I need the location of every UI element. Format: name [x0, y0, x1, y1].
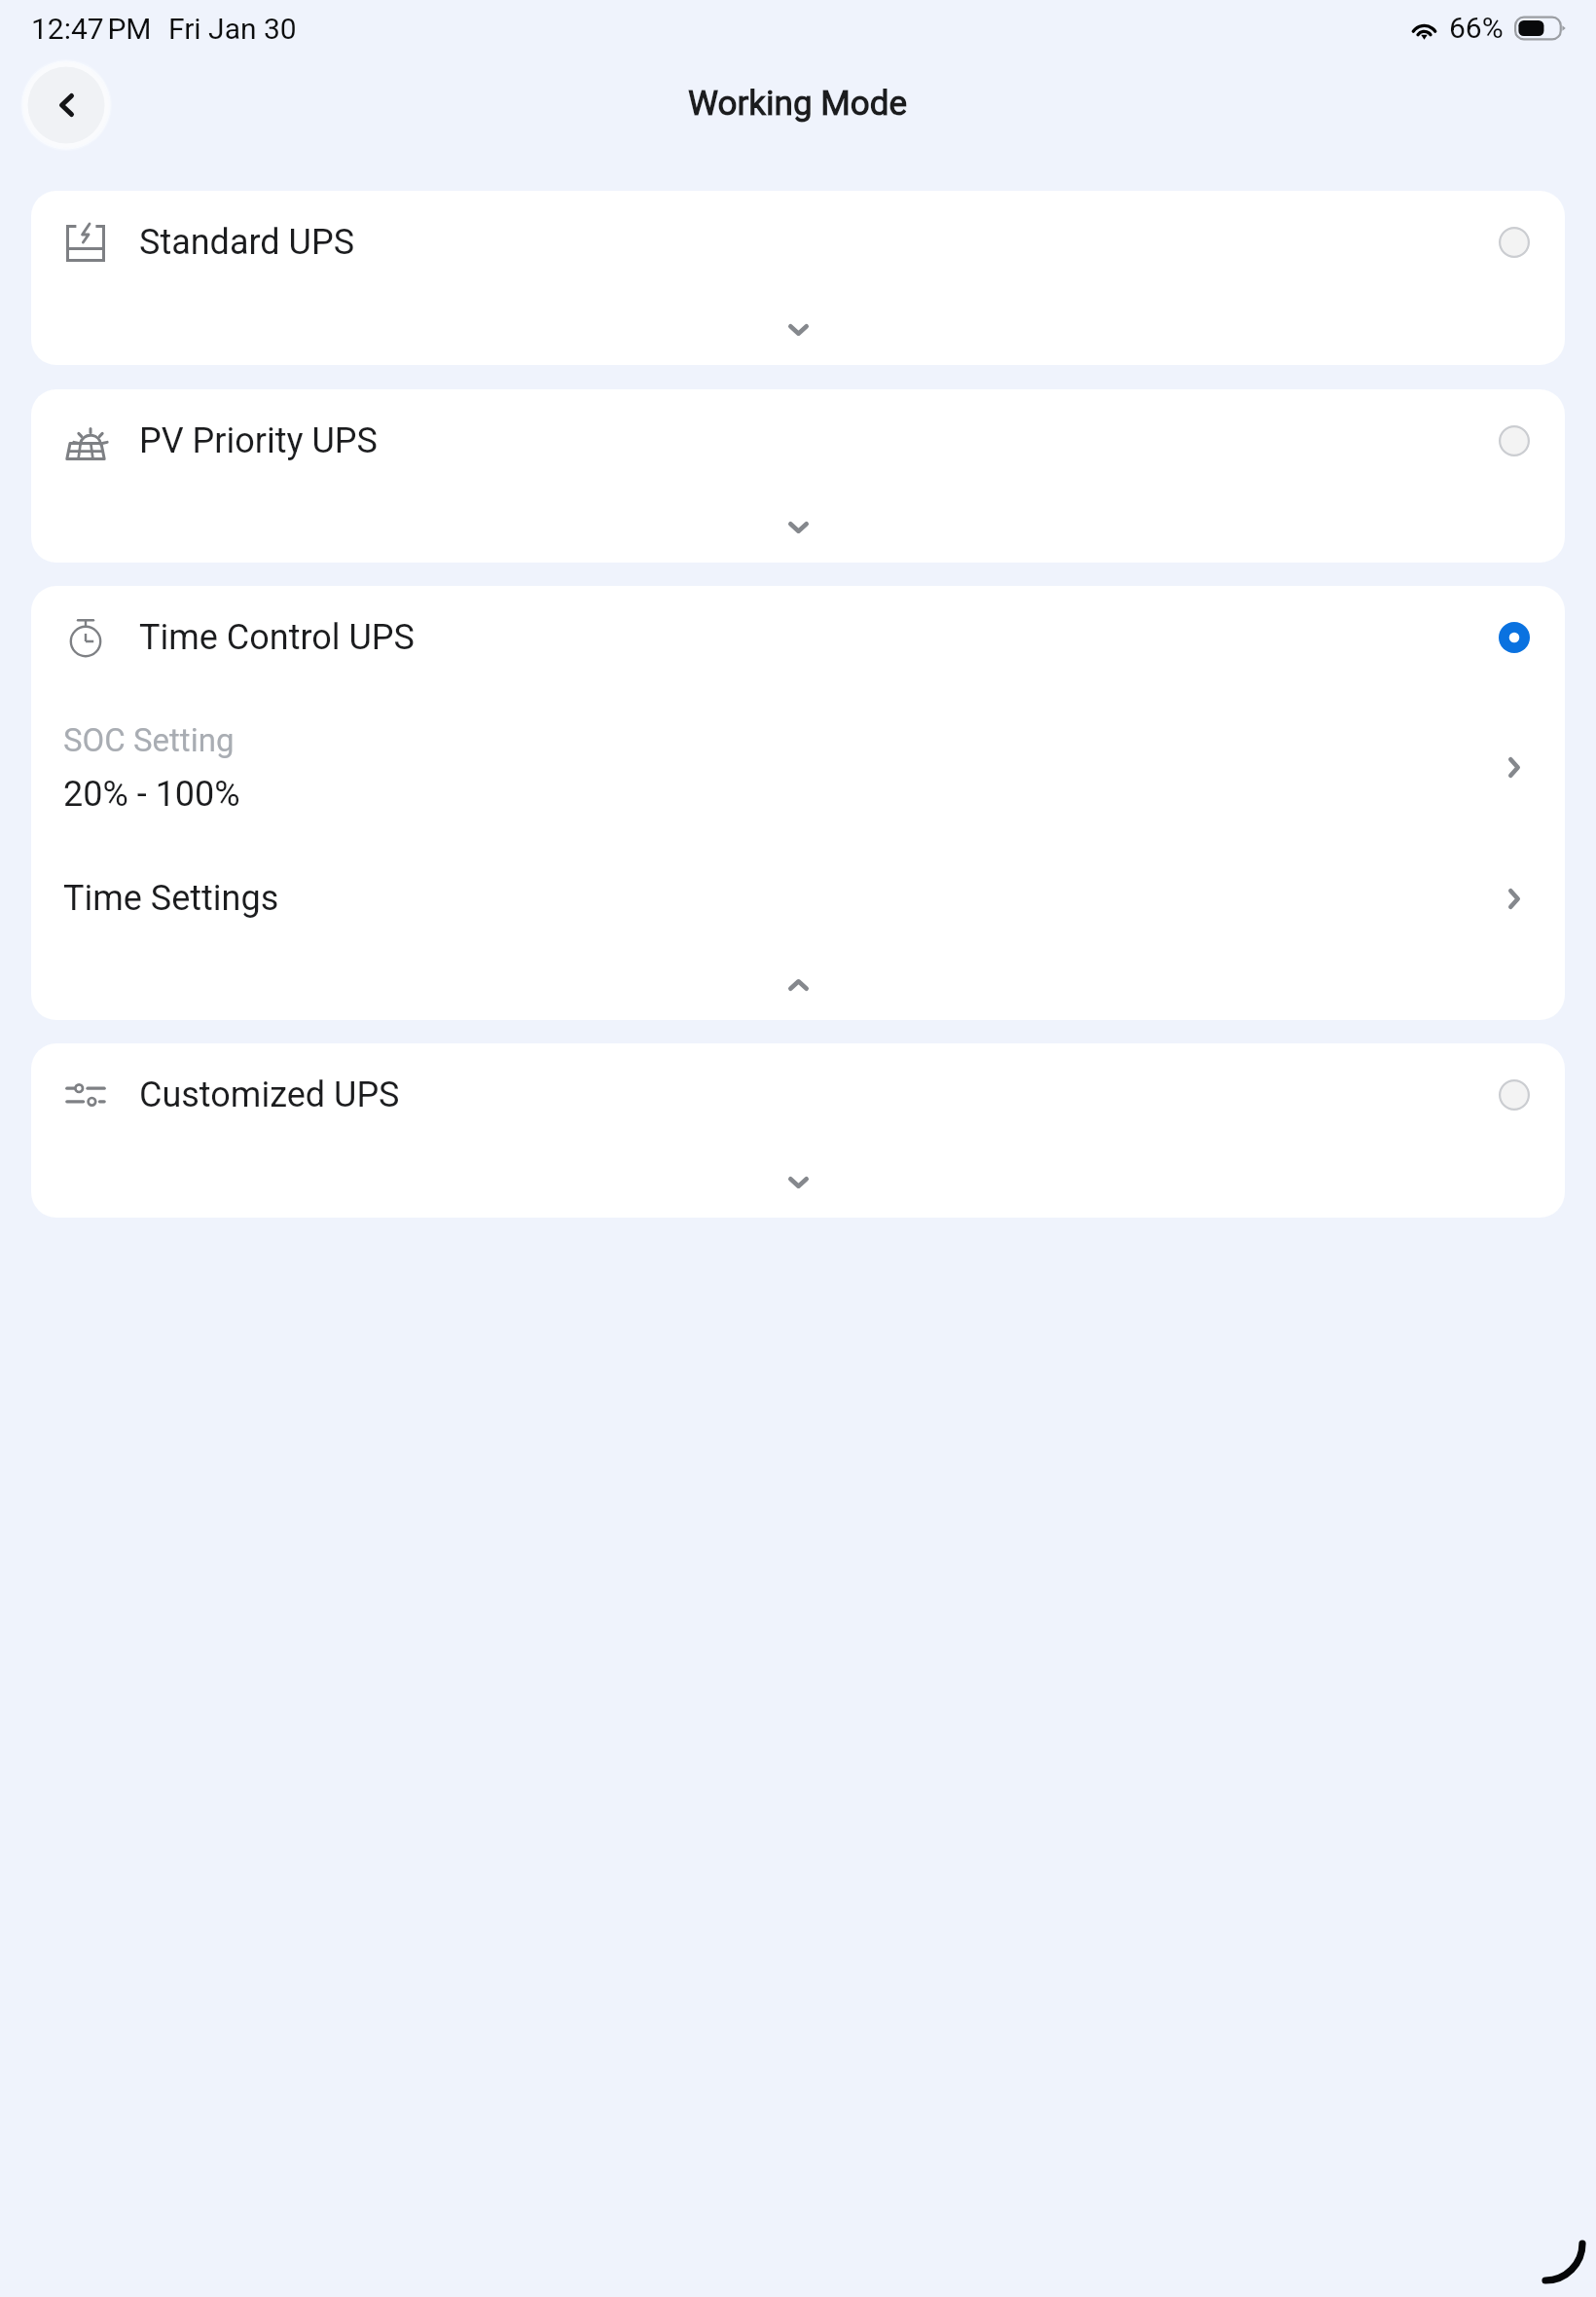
button[interactable]: Expand	[31, 492, 1565, 563]
staticText: 66%	[1449, 11, 1504, 45]
button[interactable]: PV Priority UPS	[31, 389, 1565, 492]
button[interactable]: Expand	[31, 1146, 1565, 1218]
staticText: Standard UPS	[139, 222, 355, 263]
button[interactable]: Expand	[31, 293, 1565, 365]
button[interactable]: Time Control UPS	[31, 586, 1565, 688]
staticText: Working Mode	[688, 84, 908, 124]
staticText: Customized UPS	[139, 1075, 400, 1115]
staticText: Time Settings	[63, 878, 279, 919]
staticText: Fri Jan 30	[168, 12, 297, 46]
button[interactable]: Time Settings	[31, 843, 1565, 950]
button[interactable]: Customized UPS	[31, 1043, 1565, 1146]
button[interactable]: SOC Setting	[31, 688, 1565, 843]
staticText: SOC Setting	[63, 721, 235, 759]
button[interactable]: Back	[20, 59, 112, 151]
staticText: 20% - 100%	[63, 774, 240, 815]
button[interactable]: Collapse	[31, 950, 1565, 1020]
button[interactable]: Standard UPS	[31, 191, 1565, 293]
staticText: PV Priority UPS	[139, 420, 378, 461]
staticText: Time Control UPS	[139, 617, 415, 658]
staticText: 12:47 PM	[31, 12, 152, 46]
